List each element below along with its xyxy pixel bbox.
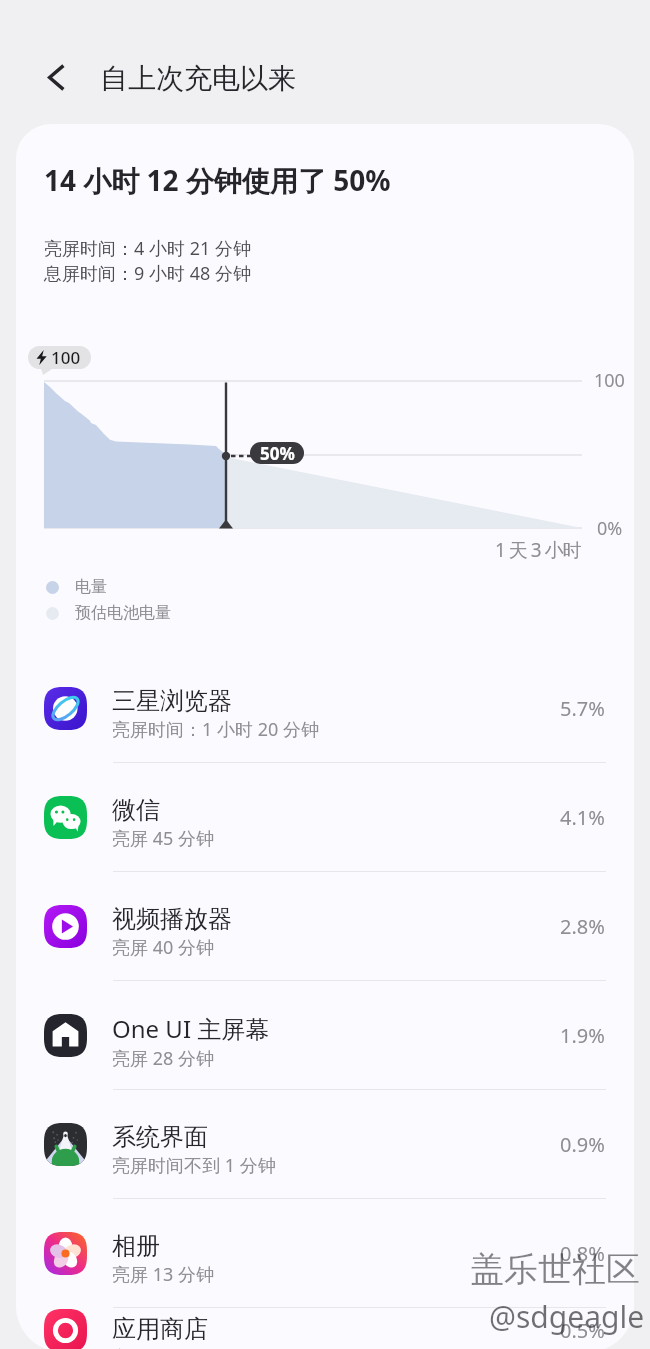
button[interactable]: One UI 主屏幕 <box>16 981 634 1089</box>
button[interactable]: 视频播放器 <box>16 872 634 980</box>
staticText: 电量 <box>75 577 107 597</box>
staticText: @sdgeagle <box>489 1296 645 1337</box>
staticText: 1.9% <box>560 1022 605 1049</box>
staticText: 2.8% <box>560 913 605 940</box>
button[interactable]: 微信 <box>16 763 634 871</box>
staticText: 4.1% <box>560 804 605 831</box>
staticText: 亮屏 13 分钟 <box>112 1262 214 1287</box>
staticText: 0% <box>597 516 623 541</box>
button[interactable]: 系统界面 <box>16 1090 634 1198</box>
staticText: 0.9% <box>560 1131 605 1158</box>
staticText: One UI 主屏幕 <box>112 1012 270 1045</box>
staticText: 亮屏 40 分钟 <box>112 935 214 960</box>
button[interactable]: 三星浏览器 <box>16 654 634 762</box>
staticText: 亮屏时间：1 小时 20 分钟 <box>112 717 319 742</box>
staticText: 自上次充电以来 <box>100 61 296 96</box>
button[interactable]: 相册 <box>16 1199 634 1307</box>
staticText: 相册 <box>112 1231 160 1261</box>
staticText: 5.7% <box>560 695 605 722</box>
staticText: 14 小时 12 分钟使用了 50% <box>44 161 391 199</box>
staticText: 亮屏时间不到 1 分钟 <box>112 1153 276 1178</box>
staticText: 亮屏 28 分钟 <box>112 1046 214 1071</box>
staticText: 0.8% <box>560 1240 605 1267</box>
staticText: 盖乐世社区 <box>470 1248 640 1291</box>
staticText: 0.5% <box>560 1317 605 1344</box>
staticText: 三星浏览器 <box>112 686 232 716</box>
staticText: 100 <box>594 368 625 393</box>
staticText: 亮屏 45 分钟 <box>112 826 214 851</box>
staticText: 微信 <box>112 795 160 825</box>
staticText: 1 天 3 小时 <box>495 537 581 563</box>
staticText: 100 <box>51 346 81 369</box>
staticText: 息屏时间：9 小时 48 分钟 <box>44 261 251 286</box>
staticText: 50% <box>260 442 295 464</box>
button[interactable]: 应用商店 <box>16 1308 634 1349</box>
staticText: 视频播放器 <box>112 904 232 934</box>
staticText: 系统界面 <box>112 1122 208 1152</box>
staticText: 预估电池电量 <box>75 603 171 623</box>
button[interactable]: Back <box>29 58 84 97</box>
staticText: 应用商店 <box>112 1314 208 1344</box>
staticText: 亮屏时间：4 小时 21 分钟 <box>44 236 251 261</box>
